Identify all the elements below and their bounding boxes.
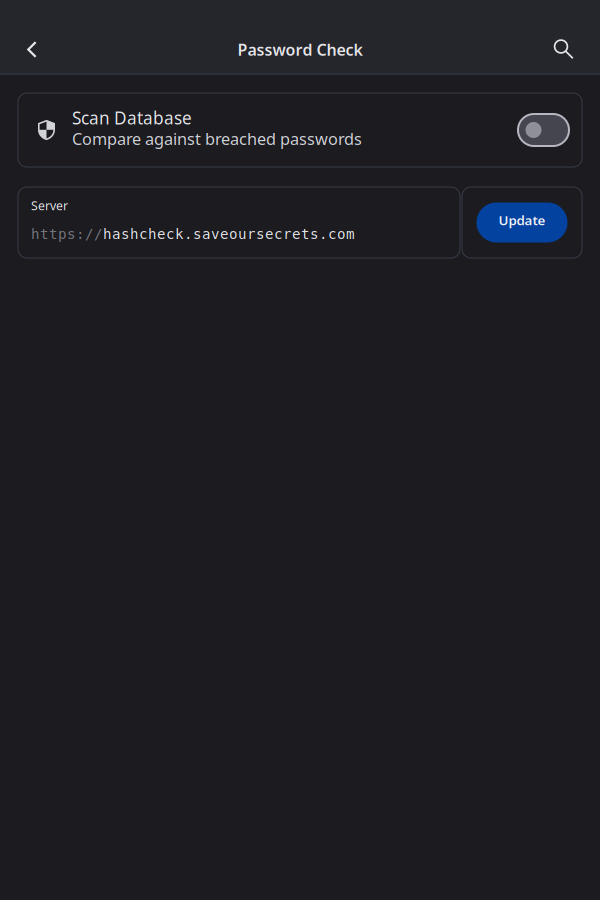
staticText: Compare against breached passwords — [72, 128, 362, 150]
staticText: Server — [31, 197, 68, 214]
button[interactable]: Scan Database — [18, 93, 582, 167]
staticText: hashcheck.saveoursecrets.com — [103, 226, 355, 242]
button[interactable]: Search — [542, 25, 586, 73]
button[interactable]: Server — [18, 187, 460, 258]
button[interactable]: Update — [462, 187, 582, 258]
staticText: Password Check — [237, 39, 362, 60]
button[interactable]: Back — [10, 25, 54, 73]
staticText: Scan Database — [72, 106, 192, 130]
staticText: https:// — [31, 226, 103, 242]
staticText: Update — [498, 211, 545, 229]
